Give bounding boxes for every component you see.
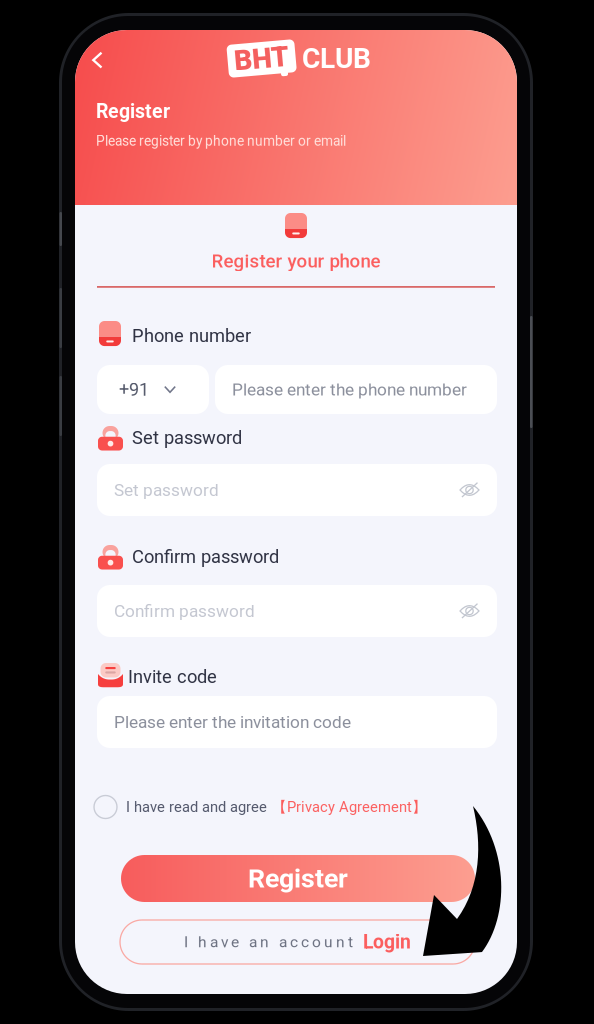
button[interactable]: Back <box>92 45 126 75</box>
staticText: Confirm password <box>114 601 255 621</box>
button[interactable]: Please enter the invitation code <box>97 696 497 748</box>
staticText: Register <box>248 863 348 894</box>
button[interactable]: Confirm password <box>97 585 497 637</box>
staticText: Phone number <box>132 325 251 346</box>
button[interactable]: Register <box>121 855 475 902</box>
staticText: Confirm password <box>132 546 279 567</box>
staticText: Register your phone <box>211 250 380 272</box>
button[interactable]: +91 <box>97 365 209 414</box>
staticText: Register <box>96 100 170 123</box>
staticText: 【Privacy Agreement】 <box>272 798 427 816</box>
staticText: Login <box>353 931 411 953</box>
staticText: Set password <box>114 480 219 500</box>
staticText: +91 <box>119 379 149 400</box>
staticText: CLUB <box>302 42 371 75</box>
staticText: Set password <box>132 427 242 448</box>
button[interactable]: I h a v e a n a c c o u n t <box>120 920 475 964</box>
staticText: Please register by phone number or email <box>96 133 346 149</box>
staticText: I h a v e a n a c c o u n t <box>184 933 353 951</box>
button[interactable]: Set password <box>97 464 497 516</box>
staticText: Please enter the phone number <box>232 379 467 400</box>
staticText: I have read and agree <box>126 798 267 816</box>
staticText: BHT <box>234 42 289 75</box>
button[interactable]: I have read and agree <box>94 792 494 822</box>
button[interactable]: Register your phone <box>75 249 517 273</box>
button[interactable]: Please enter the phone number <box>215 365 497 414</box>
staticText: Please enter the invitation code <box>114 712 351 732</box>
staticText: Invite code <box>128 666 217 687</box>
